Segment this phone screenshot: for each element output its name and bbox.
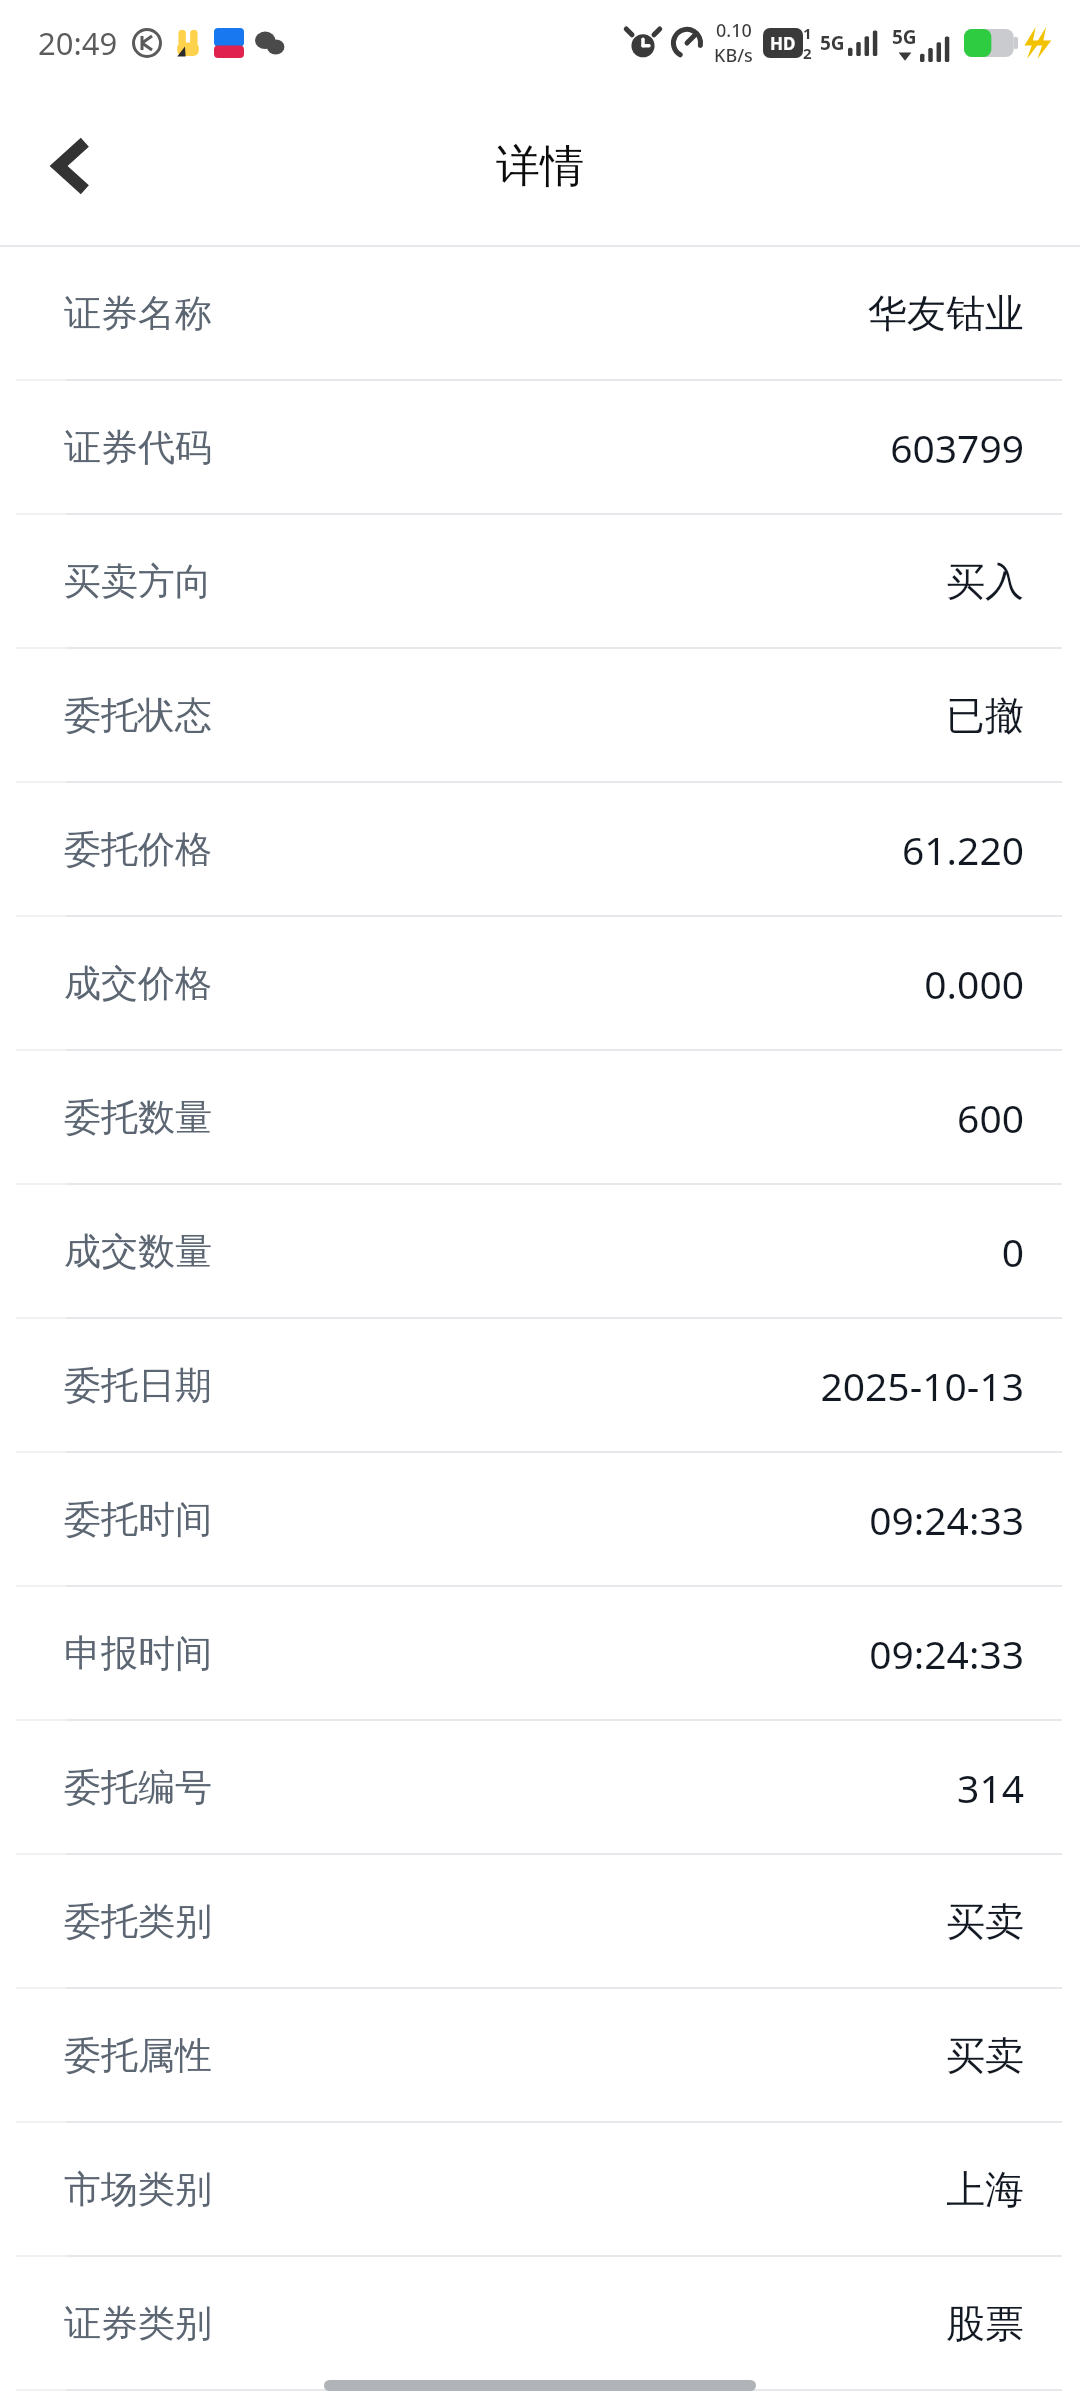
button[interactable]: 成交价格 xyxy=(0,917,1080,1051)
staticText: 2025-10-13 xyxy=(820,1359,1024,1412)
staticText: 委托时间 xyxy=(64,1496,212,1543)
staticText: 5G xyxy=(892,24,917,50)
button[interactable]: 市场类别 xyxy=(0,2123,1080,2257)
staticText: 买入 xyxy=(946,557,1024,606)
staticText: 61.220 xyxy=(902,823,1024,876)
button[interactable]: 委托编号 xyxy=(0,1721,1080,1855)
staticText: 详情 xyxy=(496,139,584,194)
staticText: 上海 xyxy=(946,2165,1024,2214)
staticText: 成交数量 xyxy=(64,1228,212,1275)
staticText: 0.000 xyxy=(924,957,1024,1010)
button[interactable]: 委托数量 xyxy=(0,1051,1080,1185)
staticText: 09:24:33 xyxy=(869,1627,1024,1680)
button[interactable]: 证券名称 xyxy=(0,247,1080,381)
button[interactable]: 证券类别 xyxy=(0,2257,1080,2391)
staticText: 证券代码 xyxy=(64,424,212,471)
button[interactable]: 委托属性 xyxy=(0,1989,1080,2123)
button[interactable]: 申报时间 xyxy=(0,1587,1080,1721)
button[interactable]: 委托类别 xyxy=(0,1855,1080,1989)
staticText: 买卖 xyxy=(946,1897,1024,1946)
staticText: 委托数量 xyxy=(64,1094,212,1141)
staticText: 委托状态 xyxy=(64,692,212,739)
button[interactable]: 证券代码 xyxy=(0,381,1080,515)
staticText: 买卖方向 xyxy=(64,558,212,605)
button[interactable]: 委托日期 xyxy=(0,1319,1080,1453)
staticText: 600 xyxy=(957,1091,1024,1144)
staticText: 华友钴业 xyxy=(868,289,1024,338)
button[interactable]: 委托状态 xyxy=(0,649,1080,783)
staticText: HD xyxy=(770,32,796,55)
staticText: 成交价格 xyxy=(64,960,212,1007)
staticText: 证券类别 xyxy=(64,2300,212,2347)
staticText: 314 xyxy=(957,1761,1024,1814)
staticText: 市场类别 xyxy=(64,2166,212,2213)
button[interactable]: 成交数量 xyxy=(0,1185,1080,1319)
staticText: 09:24:33 xyxy=(869,1493,1024,1546)
staticText: 委托日期 xyxy=(64,1362,212,1409)
staticText: 0 xyxy=(1001,1225,1024,1278)
staticText: 申报时间 xyxy=(64,1630,212,1677)
button[interactable]: 买卖方向 xyxy=(0,515,1080,649)
staticText: 2 xyxy=(803,43,812,63)
staticText: 603799 xyxy=(890,421,1024,474)
button[interactable]: 委托时间 xyxy=(0,1453,1080,1587)
staticText: 股票 xyxy=(946,2299,1024,2348)
staticText: 委托价格 xyxy=(64,826,212,873)
staticText: 委托属性 xyxy=(64,2032,212,2079)
staticText: 委托编号 xyxy=(64,1764,212,1811)
staticText: 委托类别 xyxy=(64,1898,212,1945)
staticText: 5G xyxy=(820,30,845,56)
staticText: 证券名称 xyxy=(64,290,212,337)
staticText: 买卖 xyxy=(946,2031,1024,2080)
staticText: 已撤 xyxy=(946,691,1024,740)
staticText: 20:49 xyxy=(38,22,118,64)
staticText: KB/s xyxy=(714,43,753,68)
staticText: 0.10 xyxy=(716,18,752,43)
staticText: 1 xyxy=(803,23,812,43)
button[interactable]: Back xyxy=(22,118,118,214)
button[interactable]: 委托价格 xyxy=(0,783,1080,917)
